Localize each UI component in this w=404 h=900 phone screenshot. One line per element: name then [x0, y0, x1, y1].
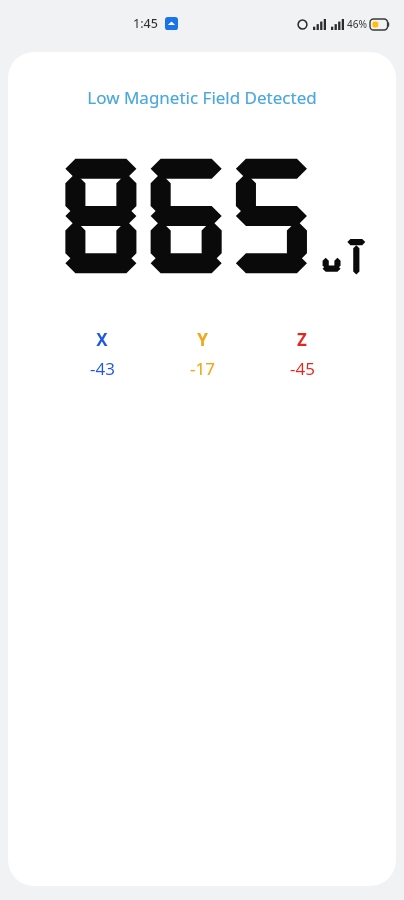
staticText: Z: [297, 328, 307, 351]
staticText: Low Magnetic Field Detected: [87, 86, 317, 109]
button[interactable]: Y: [152, 328, 252, 380]
staticText: 1:45: [133, 15, 158, 32]
staticText: -43: [90, 357, 115, 380]
button[interactable]: Z: [252, 328, 352, 380]
button[interactable]: X: [26, 314, 378, 394]
staticText: Y: [197, 328, 208, 351]
staticText: -17: [190, 357, 215, 380]
staticText: X: [96, 328, 108, 351]
button[interactable]: [26, 143, 378, 300]
staticText: 46%: [347, 17, 367, 31]
staticText: -45: [290, 357, 315, 380]
button[interactable]: X: [52, 328, 152, 380]
